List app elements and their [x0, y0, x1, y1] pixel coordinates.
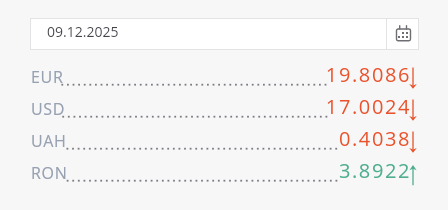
staticText: 09.12.2025	[47, 22, 119, 41]
staticText: 0.4038	[211, 125, 411, 152]
staticText: EUR	[31, 66, 64, 88]
button[interactable]: EUR	[0, 64, 448, 96]
staticText: 19.8086	[211, 61, 411, 88]
staticText: 17.0024	[211, 93, 411, 120]
staticText: UAH	[31, 130, 67, 152]
button[interactable]: UAH	[0, 128, 448, 160]
button[interactable]: Open calendar	[387, 18, 419, 49]
button[interactable]: USD	[0, 96, 448, 128]
staticText: RON	[31, 162, 68, 184]
button[interactable]: RON	[0, 160, 448, 192]
staticText: 3.8922	[211, 157, 411, 184]
staticText: USD	[31, 98, 66, 120]
